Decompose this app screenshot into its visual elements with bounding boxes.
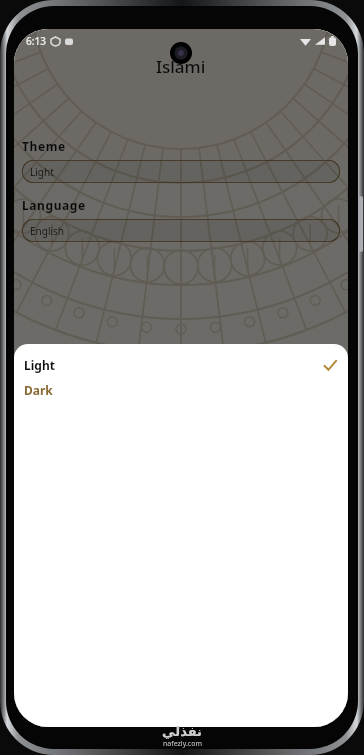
staticText: Light [24, 357, 55, 373]
staticText: Language [22, 197, 86, 213]
button[interactable]: Light [14, 352, 348, 377]
staticText: Light [30, 165, 54, 179]
staticText: نفذلي [162, 724, 202, 739]
staticText: Theme [22, 138, 66, 154]
staticText: English [30, 224, 65, 238]
other: Selected [322, 357, 338, 373]
staticText: Islami [156, 55, 206, 78]
button[interactable]: Light [22, 160, 340, 183]
staticText: Dark [24, 382, 53, 398]
button[interactable]: Dark [14, 377, 348, 402]
button[interactable]: English [22, 219, 340, 242]
staticText: 6:13 [26, 34, 46, 48]
staticText: nafezly.com [163, 739, 202, 749]
